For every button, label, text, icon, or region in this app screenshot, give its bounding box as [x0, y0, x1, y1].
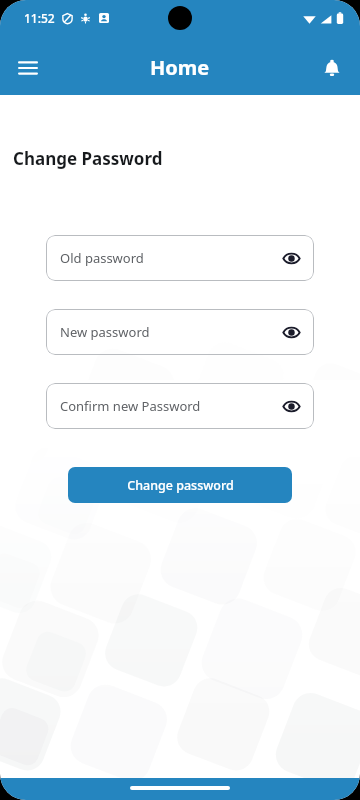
button[interactable]: Confirm new Password: [46, 383, 314, 429]
staticText: Change password: [127, 477, 234, 494]
button[interactable]: Show password: [279, 246, 303, 270]
staticText: New password: [60, 323, 150, 341]
staticText: Change Password: [13, 147, 163, 170]
button[interactable]: Show password: [279, 394, 303, 418]
button[interactable]: Old password: [46, 235, 314, 281]
staticText: Confirm new Password: [60, 397, 201, 415]
button[interactable]: Change password: [68, 467, 292, 503]
button[interactable]: Open navigation menu: [8, 48, 48, 88]
button[interactable]: Notifications: [312, 48, 352, 88]
button[interactable]: New password: [46, 309, 314, 355]
staticText: Home: [150, 54, 210, 81]
staticText: Old password: [60, 249, 144, 267]
staticText: 11:52: [24, 10, 55, 26]
button[interactable]: Show password: [279, 320, 303, 344]
